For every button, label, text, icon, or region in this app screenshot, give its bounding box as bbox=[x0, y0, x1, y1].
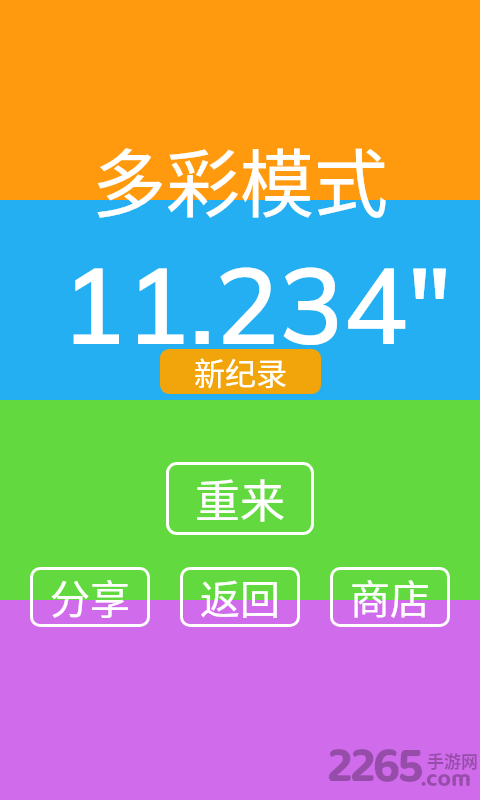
staticText: 重来 bbox=[195, 466, 286, 531]
staticText: .com bbox=[421, 760, 472, 798]
staticText: 手游网 bbox=[427, 748, 478, 773]
button[interactable]: 商店 bbox=[330, 567, 450, 627]
staticText: 2265 bbox=[327, 727, 421, 800]
staticText: 返回 bbox=[200, 568, 280, 626]
button[interactable]: 重来 bbox=[166, 462, 314, 535]
staticText: 11.234" bbox=[61, 236, 452, 370]
staticText: 分享 bbox=[50, 568, 130, 626]
staticText: 商店 bbox=[350, 568, 430, 626]
staticText: 多彩模式 bbox=[92, 125, 388, 232]
button[interactable]: 分享 bbox=[30, 567, 150, 627]
staticText: 新纪录 bbox=[194, 349, 287, 394]
button[interactable]: 返回 bbox=[180, 567, 300, 627]
button[interactable]: 新纪录 bbox=[160, 349, 321, 394]
